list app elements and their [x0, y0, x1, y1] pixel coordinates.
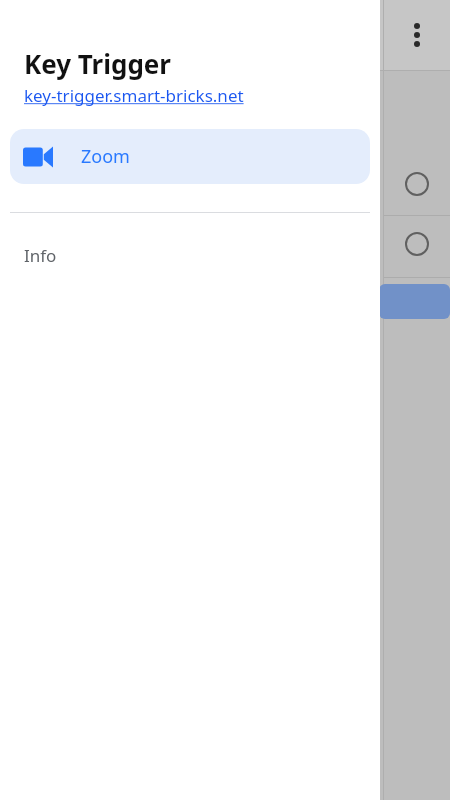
button[interactable]	[379, 284, 450, 319]
button[interactable]: key-trigger.smart-bricks.net	[24, 84, 244, 107]
staticText: key-trigger.smart-bricks.net	[24, 84, 244, 107]
button[interactable]: Info	[0, 237, 380, 273]
staticText: Zoom	[81, 144, 130, 169]
staticText: Info	[24, 244, 57, 267]
button[interactable]	[384, 216, 450, 276]
button[interactable]: Zoom	[10, 129, 370, 184]
button[interactable]: More options	[401, 12, 433, 58]
button[interactable]	[384, 155, 450, 215]
staticText: Key Trigger	[24, 46, 171, 81]
